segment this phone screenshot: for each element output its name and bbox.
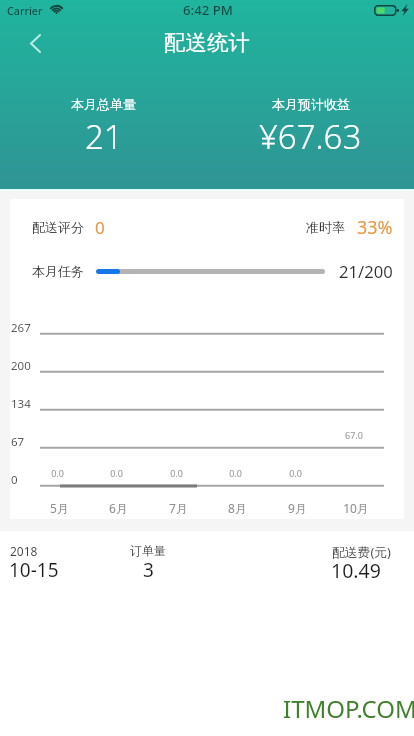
staticText: 6月 <box>109 500 128 516</box>
staticText: 0 <box>11 472 18 488</box>
staticText: 10-15 <box>9 557 59 583</box>
staticText: ¥67.63 <box>259 114 362 159</box>
staticText: 订单量 <box>130 543 166 558</box>
staticText: 本月任务 <box>32 263 84 279</box>
staticText: 7月 <box>169 500 188 516</box>
staticText: 0.0 <box>170 467 183 479</box>
staticText: 2018 <box>10 543 38 559</box>
staticText: 134 <box>11 396 31 412</box>
staticText: 67.0 <box>345 429 363 441</box>
staticText: 10.49 <box>331 557 381 584</box>
staticText: 67 <box>11 434 25 450</box>
staticText: 0.0 <box>51 467 64 479</box>
staticText: 准时率 <box>306 219 345 235</box>
staticText: Carrier <box>7 4 43 19</box>
staticText: 33% <box>357 215 393 240</box>
staticText: 0 <box>95 216 105 239</box>
staticText: 21/200 <box>339 260 393 283</box>
staticText: 3 <box>143 557 154 583</box>
staticText: ITMOP.COM <box>283 692 414 725</box>
staticText: 本月预计收益 <box>272 96 350 112</box>
staticText: 8月 <box>228 500 247 516</box>
staticText: 0.0 <box>110 467 123 479</box>
staticText: 0.0 <box>289 467 302 479</box>
staticText: 配送评分 <box>32 219 84 235</box>
staticText: 0.0 <box>229 467 242 479</box>
staticText: 配送费(元) <box>332 543 391 560</box>
staticText: 本月总单量 <box>71 96 136 112</box>
staticText: 6:42 PM <box>183 1 233 19</box>
staticText: 9月 <box>288 500 307 516</box>
staticText: 配送统计 <box>164 29 250 56</box>
staticText: 200 <box>11 358 31 374</box>
button[interactable]: Back <box>14 22 56 64</box>
staticText: 21 <box>85 114 123 159</box>
staticText: 10月 <box>343 500 369 516</box>
staticText: 267 <box>11 320 31 336</box>
staticText: 5月 <box>50 500 69 516</box>
